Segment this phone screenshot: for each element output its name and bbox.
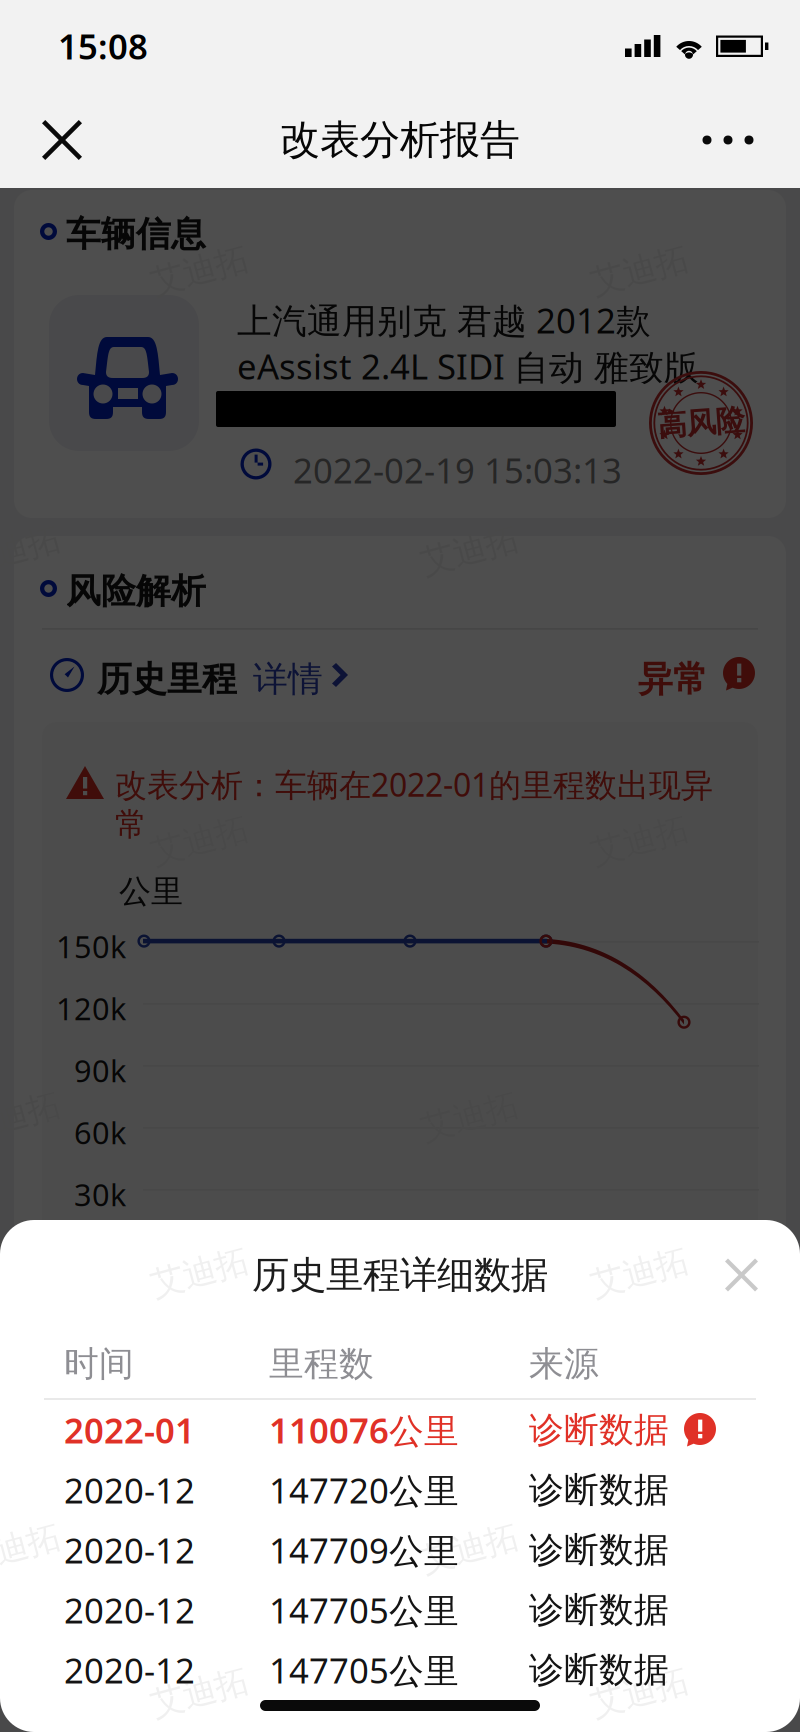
button[interactable]: Close <box>705 1238 778 1311</box>
staticText: 改表分析：车辆在2022-01的里程数出现异 <box>115 763 713 805</box>
staticText: 2022-02-19 15:03:13 <box>293 447 622 493</box>
staticText: 2020-12 <box>64 1647 195 1693</box>
staticText: 60k <box>74 1112 126 1153</box>
staticText: 诊断数据 <box>529 1529 669 1571</box>
staticText: 147705公里 <box>269 1647 459 1693</box>
staticText: 2020-12 <box>64 1527 195 1573</box>
staticText: 150k <box>56 926 126 967</box>
staticText: 110076公里 <box>269 1407 459 1453</box>
staticText: 车辆信息 <box>66 213 206 256</box>
staticText: 120k <box>56 988 126 1029</box>
staticText: 风险解析 <box>66 570 206 613</box>
staticText: 诊断数据 <box>529 1409 669 1451</box>
staticText: 公里 <box>119 872 183 911</box>
staticText: 30k <box>74 1174 126 1215</box>
staticText: eAssist 2.4L SIDI 自动 雅致版 <box>237 343 699 389</box>
staticText: 诊断数据 <box>529 1589 669 1631</box>
staticText: 异常 <box>638 658 708 701</box>
staticText: 里程数 <box>269 1343 374 1385</box>
staticText: 2022-01 <box>64 1407 195 1453</box>
staticText: 上汽通用别克 君越 2012款 <box>237 297 651 343</box>
staticText: 历史里程 <box>97 658 237 701</box>
staticText: 2020-12 <box>64 1587 195 1633</box>
staticText: 艾迪拓 <box>150 1672 249 1713</box>
staticText: 艾迪拓 <box>0 1528 61 1569</box>
button[interactable]: More <box>680 94 776 186</box>
staticText: 来源 <box>529 1343 599 1385</box>
staticText: 高风险 <box>657 405 744 441</box>
staticText: 147720公里 <box>269 1467 459 1513</box>
staticText: 2020-12 <box>64 1467 195 1513</box>
staticText: 详情 <box>253 658 323 701</box>
button[interactable]: Close <box>20 94 104 186</box>
staticText: 147705公里 <box>269 1587 459 1633</box>
staticText: 90k <box>74 1050 126 1091</box>
staticText: 147709公里 <box>269 1527 459 1573</box>
staticText: 15:08 <box>58 23 148 69</box>
staticText: 诊断数据 <box>529 1649 669 1691</box>
staticText: 历史里程详细数据 <box>252 1252 548 1298</box>
staticText: 艾迪拓 <box>590 1672 689 1713</box>
staticText: 艾迪拓 <box>590 1252 689 1293</box>
staticText: 艾迪拓 <box>420 1528 519 1569</box>
staticText: 诊断数据 <box>529 1469 669 1511</box>
staticText: 艾迪拓 <box>150 1252 249 1293</box>
staticText: 改表分析报告 <box>280 115 520 164</box>
staticText: 时间 <box>64 1343 134 1385</box>
staticText: 常 <box>115 805 147 844</box>
